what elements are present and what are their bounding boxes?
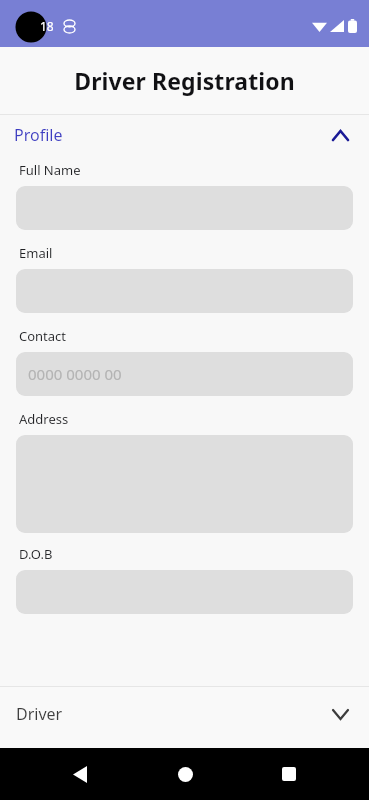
button[interactable]: Home [161, 750, 209, 798]
button[interactable]: Recent apps [265, 750, 313, 798]
staticText: Email [19, 244, 53, 262]
button[interactable]: Back [56, 750, 104, 798]
other: Expand Driver section [329, 703, 351, 725]
button[interactable]: 0000 0000 00 [16, 352, 353, 396]
staticText: D.O.B [19, 545, 53, 563]
staticText: Profile [14, 124, 63, 146]
staticText: 18 [40, 18, 54, 34]
button[interactable]: Profile [0, 115, 369, 155]
staticText: Driver [16, 703, 63, 725]
staticText: Address [19, 410, 69, 428]
staticText: 0000 0000 00 [28, 364, 122, 384]
staticText: Contact [19, 327, 67, 345]
staticText: Driver Registration [0, 65, 369, 96]
button[interactable]: Driver [0, 687, 369, 740]
other: Collapse Profile section [329, 124, 351, 146]
staticText: Full Name [19, 161, 81, 179]
